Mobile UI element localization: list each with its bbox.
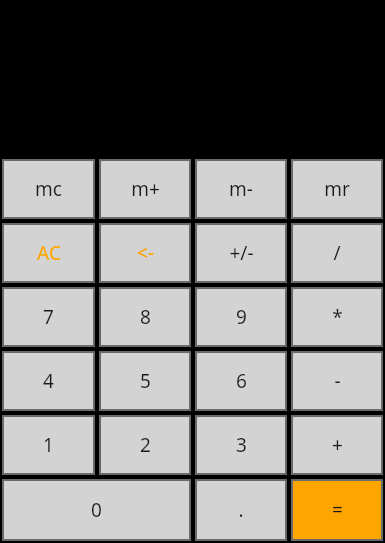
staticText: m-: [229, 176, 253, 202]
button[interactable]: /: [291, 223, 383, 283]
button[interactable]: 3: [195, 415, 287, 475]
staticText: /: [333, 240, 341, 266]
staticText: 1: [43, 432, 54, 458]
button[interactable]: 6: [195, 351, 287, 411]
staticText: +: [332, 432, 343, 458]
staticText: 0: [91, 497, 102, 523]
button[interactable]: 2: [99, 415, 191, 475]
button[interactable]: m-: [195, 159, 287, 219]
button[interactable]: 9: [195, 287, 287, 347]
staticText: mr: [324, 176, 350, 202]
staticText: 8: [140, 304, 151, 330]
staticText: 3: [236, 432, 247, 458]
button[interactable]: 0: [2, 479, 191, 541]
staticText: =: [332, 497, 343, 523]
staticText: .: [238, 497, 244, 523]
button[interactable]: 1: [2, 415, 95, 475]
button[interactable]: 4: [2, 351, 95, 411]
staticText: mc: [35, 176, 62, 202]
button[interactable]: 8: [99, 287, 191, 347]
button[interactable]: mr: [291, 159, 383, 219]
button[interactable]: 7: [2, 287, 95, 347]
staticText: AC: [37, 240, 61, 266]
button[interactable]: =: [291, 479, 383, 541]
button[interactable]: AC: [2, 223, 95, 283]
staticText: 2: [140, 432, 151, 458]
button[interactable]: -: [291, 351, 383, 411]
staticText: m+: [131, 176, 160, 202]
button[interactable]: m+: [99, 159, 191, 219]
staticText: -: [334, 368, 341, 394]
staticText: +/-: [229, 240, 254, 266]
button[interactable]: .: [195, 479, 287, 541]
staticText: 6: [236, 368, 247, 394]
staticText: *: [332, 304, 343, 330]
staticText: 7: [43, 304, 54, 330]
button[interactable]: mc: [2, 159, 95, 219]
button[interactable]: +/-: [195, 223, 287, 283]
staticText: 5: [140, 368, 151, 394]
staticText: 9: [236, 304, 247, 330]
staticText: <-: [137, 240, 154, 266]
button[interactable]: +: [291, 415, 383, 475]
button[interactable]: <-: [99, 223, 191, 283]
button[interactable]: *: [291, 287, 383, 347]
button[interactable]: 5: [99, 351, 191, 411]
staticText: 4: [43, 368, 54, 394]
